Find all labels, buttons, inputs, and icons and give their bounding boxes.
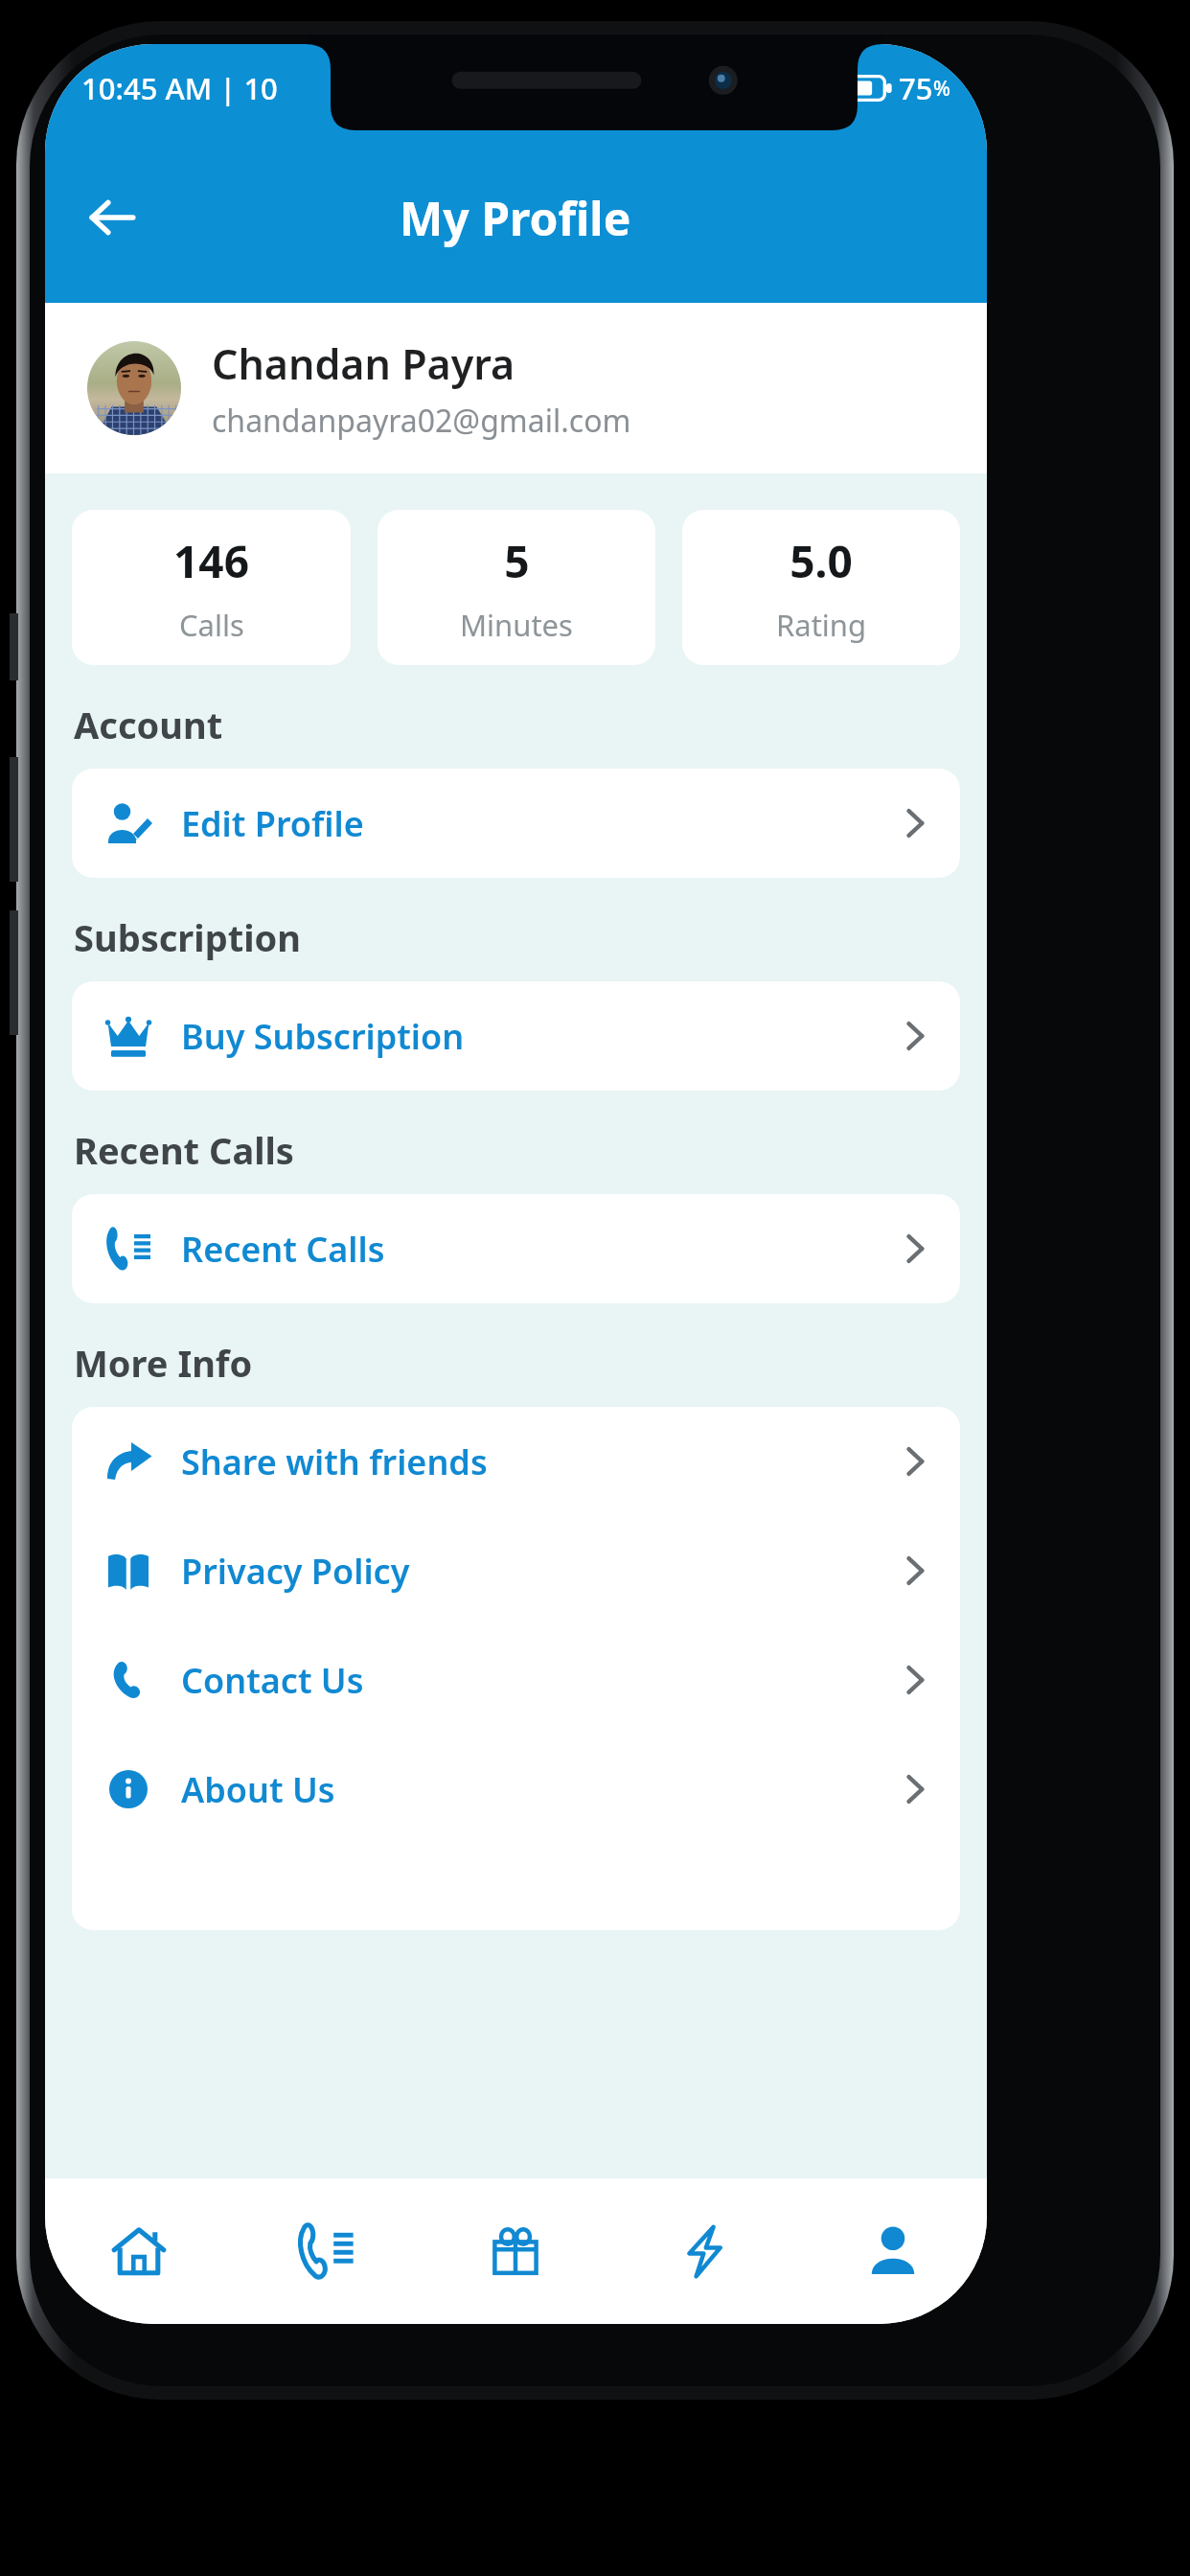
staticText: Minutes	[460, 605, 573, 645]
staticText: Rating	[776, 605, 867, 645]
staticText: About Us	[181, 1766, 335, 1813]
staticText: Recent Calls	[74, 1125, 294, 1175]
button[interactable]: Rewards	[421, 2178, 609, 2324]
button[interactable]: Edit Profile	[72, 769, 960, 878]
button[interactable]: Contact Us	[72, 1625, 960, 1735]
staticText: Privacy Policy	[181, 1548, 410, 1595]
button[interactable]: Call log	[233, 2178, 421, 2324]
staticText: 5	[504, 531, 530, 591]
staticText: 10:45 AM | 10	[81, 68, 278, 108]
button[interactable]: Privacy Policy	[72, 1516, 960, 1625]
staticText: Contact Us	[181, 1657, 364, 1704]
staticText: Edit Profile	[181, 800, 364, 847]
button[interactable]: 5.0	[682, 510, 960, 665]
button[interactable]: Recent Calls	[72, 1194, 960, 1303]
button[interactable]: Boost	[609, 2178, 798, 2324]
staticText: Recent Calls	[181, 1226, 385, 1273]
button[interactable]: 5	[378, 510, 655, 665]
staticText: 146	[173, 531, 249, 591]
button[interactable]: Profile	[798, 2178, 987, 2324]
button[interactable]: Share with friends	[72, 1407, 960, 1516]
button[interactable]: Home	[45, 2178, 233, 2324]
button[interactable]: Buy Subscription	[72, 981, 960, 1091]
staticText: Share with friends	[181, 1438, 488, 1485]
staticText: chandanpayra02@gmail.com	[212, 400, 631, 442]
staticText: Buy Subscription	[181, 1013, 465, 1060]
staticText: Subscription	[74, 912, 302, 962]
staticText: 75	[899, 68, 933, 108]
staticText: Calls	[179, 605, 244, 645]
staticText: Account	[74, 700, 223, 749]
staticText: My Profile	[400, 187, 631, 249]
button[interactable]: Chandan Payra	[45, 303, 987, 473]
staticText: Chandan Payra	[212, 335, 515, 392]
staticText: 5.0	[790, 531, 853, 591]
button[interactable]: Back	[66, 172, 158, 264]
button[interactable]: 146	[72, 510, 351, 665]
staticText: %	[933, 75, 950, 103]
button[interactable]: About Us	[72, 1735, 960, 1844]
staticText: More Info	[74, 1338, 253, 1388]
